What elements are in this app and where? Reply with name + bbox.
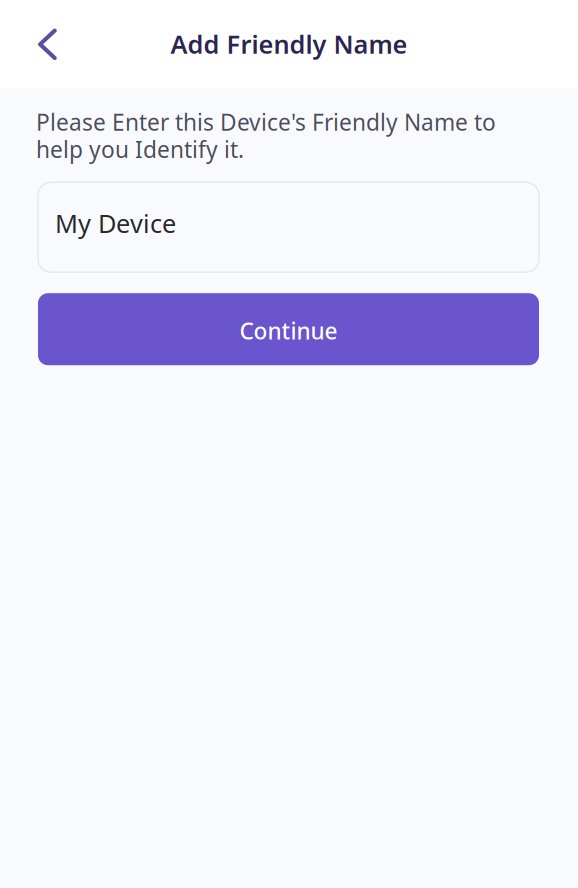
staticText: help you Identify it. <box>36 134 244 164</box>
staticText: Add Friendly Name <box>170 27 407 61</box>
button[interactable]: Continue <box>38 293 539 365</box>
button[interactable]: My Device <box>38 182 539 272</box>
button[interactable]: Back <box>25 22 69 66</box>
staticText: My Device <box>55 206 176 240</box>
staticText: Continue <box>239 316 337 346</box>
staticText: Please Enter this Device's Friendly Name… <box>36 107 496 137</box>
